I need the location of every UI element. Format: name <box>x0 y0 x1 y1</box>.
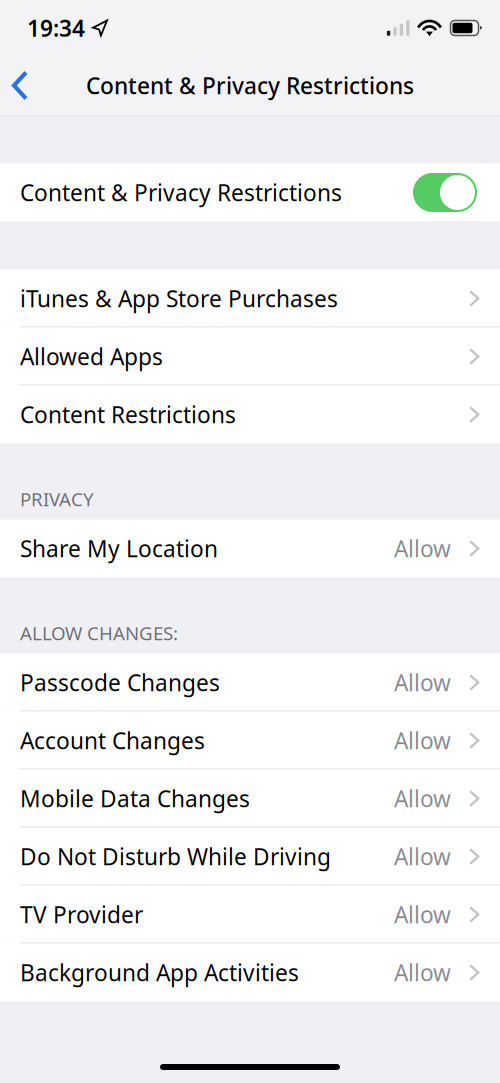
staticText: Account Changes <box>20 725 205 755</box>
staticText: Background App Activities <box>20 957 299 987</box>
staticText: Share My Location <box>20 533 218 563</box>
staticText: 19:34 <box>27 13 85 43</box>
button[interactable]: Mobile Data Changes <box>0 769 500 827</box>
button[interactable]: Background App Activities <box>0 943 500 1001</box>
staticText: iTunes & App Store Purchases <box>20 283 338 313</box>
staticText: PRIVACY <box>20 487 94 511</box>
staticText: Allow <box>394 783 451 813</box>
staticText: Allow <box>394 533 451 563</box>
staticText: Content Restrictions <box>20 399 236 429</box>
staticText: Allow <box>394 667 451 697</box>
staticText: Passcode Changes <box>20 667 220 697</box>
button[interactable]: iTunes & App Store Purchases <box>0 269 500 327</box>
staticText: Allow <box>394 841 451 871</box>
button[interactable]: Allowed Apps <box>0 327 500 385</box>
staticText: Allow <box>394 957 451 987</box>
staticText: Allowed Apps <box>20 341 163 371</box>
staticText: ALLOW CHANGES: <box>20 621 178 645</box>
button[interactable]: Passcode Changes <box>0 653 500 711</box>
staticText: Allow <box>394 899 451 929</box>
button[interactable]: Content & Privacy Restrictions <box>413 173 477 212</box>
button[interactable]: Do Not Disturb While Driving <box>0 827 500 885</box>
staticText: Allow <box>394 725 451 755</box>
button[interactable]: TV Provider <box>0 885 500 943</box>
button[interactable]: Account Changes <box>0 711 500 769</box>
button[interactable]: Share My Location <box>0 519 500 577</box>
button[interactable]: Back <box>0 60 43 110</box>
button[interactable]: Content Restrictions <box>0 385 500 443</box>
staticText: Content & Privacy Restrictions <box>20 177 342 207</box>
staticText: Do Not Disturb While Driving <box>20 841 331 871</box>
staticText: TV Provider <box>20 899 143 929</box>
staticText: Mobile Data Changes <box>20 783 250 813</box>
staticText: Content & Privacy Restrictions <box>86 70 414 100</box>
